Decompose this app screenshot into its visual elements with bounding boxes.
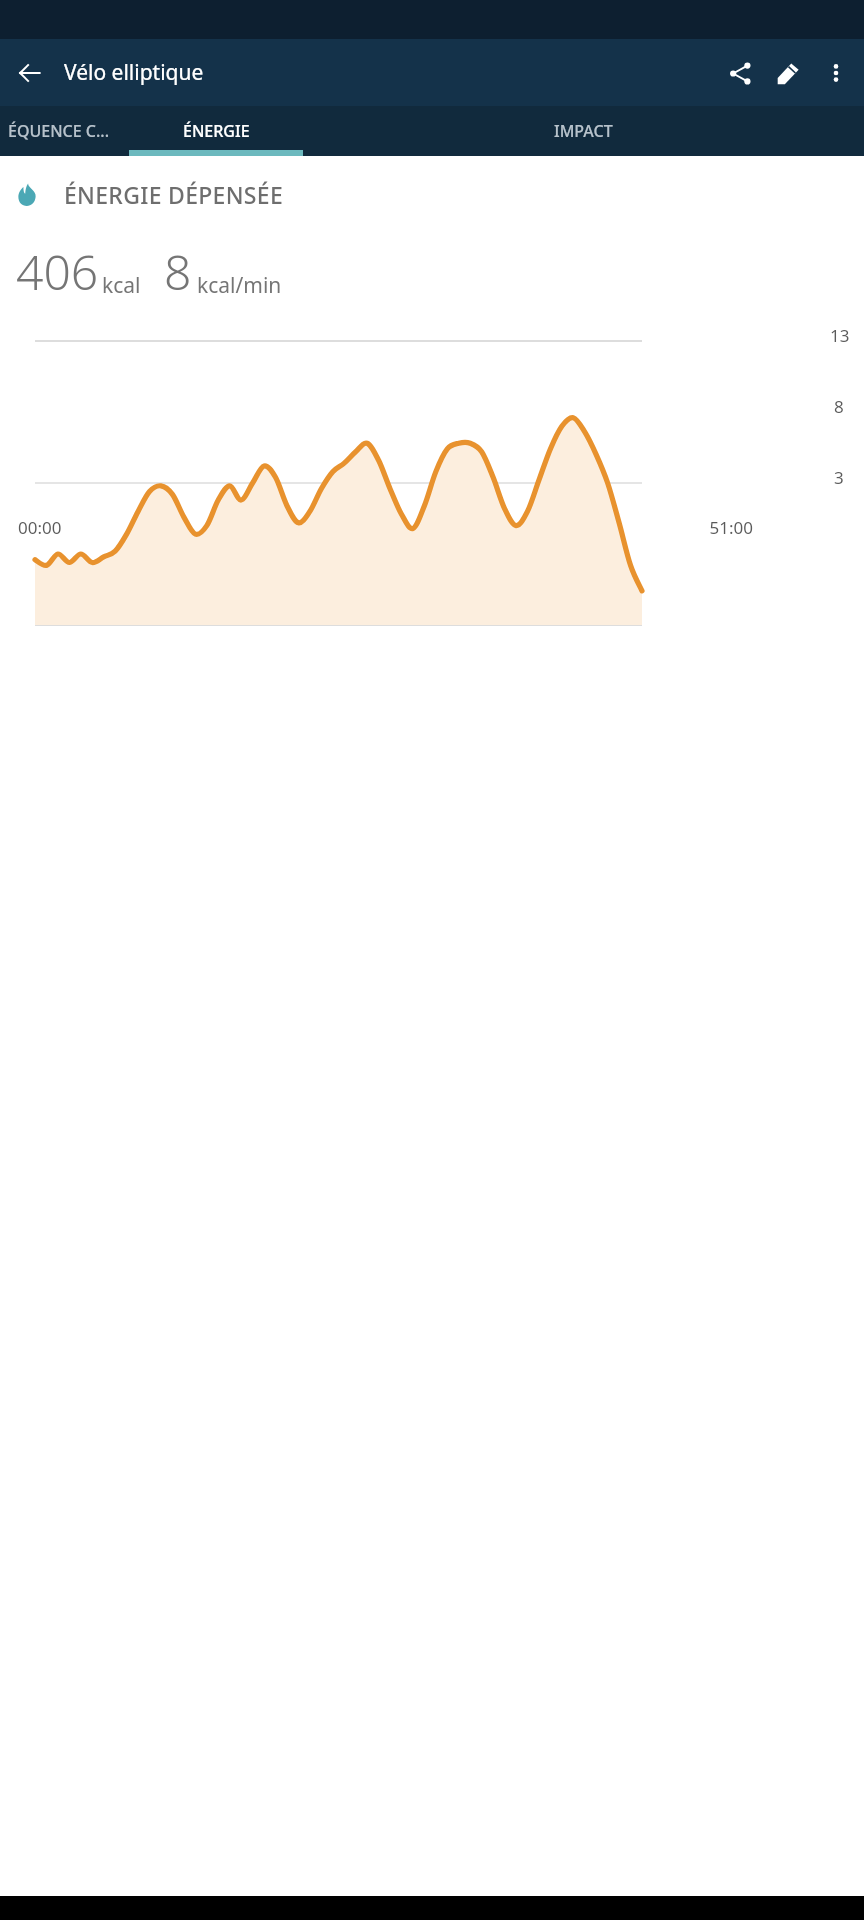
staticText: 3 bbox=[834, 466, 844, 489]
staticText: 8 bbox=[834, 395, 844, 418]
button[interactable]: Share bbox=[716, 49, 764, 97]
staticText: 406 bbox=[16, 239, 99, 304]
staticText: 8 bbox=[164, 239, 192, 304]
staticText: kcal bbox=[102, 271, 141, 300]
button[interactable]: ÉNERGIE bbox=[129, 106, 303, 156]
button[interactable]: ÉQUENCE C... bbox=[0, 106, 129, 156]
staticText: ÉNERGIE bbox=[183, 120, 250, 142]
button[interactable]: IMPACT bbox=[303, 106, 864, 156]
staticText: kcal/min bbox=[197, 271, 282, 300]
staticText: ÉQUENCE C... bbox=[8, 120, 110, 142]
button[interactable]: Back bbox=[6, 49, 54, 97]
staticText: 00:00 bbox=[18, 516, 62, 539]
button[interactable]: More options bbox=[812, 49, 860, 97]
button[interactable]: Edit bbox=[764, 49, 812, 97]
staticText: 51:00 bbox=[709, 516, 753, 539]
staticText: 13 bbox=[830, 324, 850, 347]
staticText: IMPACT bbox=[554, 120, 613, 142]
staticText: Vélo elliptique bbox=[64, 58, 204, 87]
staticText: ÉNERGIE DÉPENSÉE bbox=[64, 179, 284, 210]
